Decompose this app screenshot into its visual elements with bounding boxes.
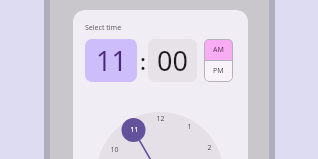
staticText: 11 [130,125,139,135]
button[interactable]: 2 [199,141,219,155]
button[interactable]: 11 [124,123,144,137]
staticText: 2 [207,143,212,153]
staticText: 10 [110,145,119,155]
button[interactable]: AM [204,39,233,60]
staticText: : [140,46,146,76]
staticText: 11 [96,42,127,79]
staticText: 00 [157,42,188,79]
button[interactable]: 00 [148,39,197,82]
staticText: 1 [187,122,192,132]
button[interactable]: 1 [179,120,199,134]
staticText: PM [213,66,224,76]
button[interactable]: PM [204,61,233,81]
staticText: Select time [85,23,122,33]
button[interactable]: 10 [104,143,124,157]
button[interactable]: 11 [85,39,137,82]
staticText: 12 [156,114,165,124]
button[interactable]: 12 [150,112,170,126]
other: Clock dial, 11 selected [0,0,318,159]
staticText: AM [213,45,224,55]
